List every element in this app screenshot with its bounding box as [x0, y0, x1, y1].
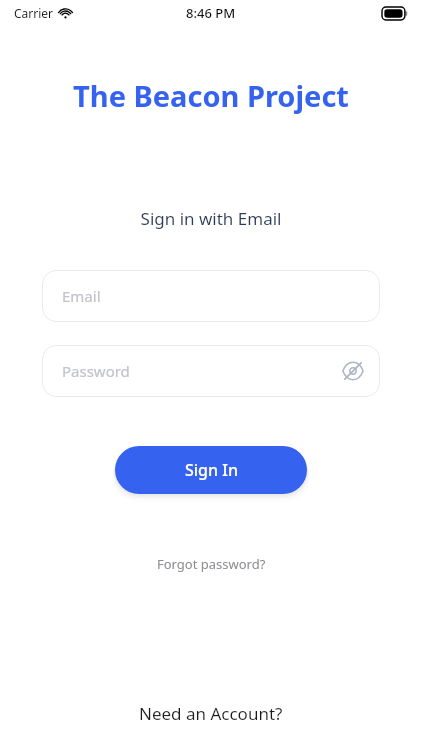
staticText: Sign in with Email: [0, 207, 422, 230]
button[interactable]: Password: [42, 345, 380, 397]
button[interactable]: Sign In: [115, 446, 307, 494]
staticText: Carrier: [14, 5, 54, 21]
button[interactable]: Show password: [336, 354, 370, 388]
staticText: Password: [62, 361, 130, 381]
button[interactable]: Forgot password?: [149, 552, 274, 576]
staticText: Email: [62, 286, 101, 306]
staticText: Forgot password?: [157, 555, 266, 573]
button[interactable]: Email: [42, 270, 380, 322]
button[interactable]: Need an Account?: [131, 699, 291, 728]
staticText: Sign In: [185, 459, 238, 481]
staticText: The Beacon Project: [0, 76, 422, 115]
staticText: 8:46 PM: [186, 4, 236, 22]
staticText: Need an Account?: [139, 702, 283, 725]
